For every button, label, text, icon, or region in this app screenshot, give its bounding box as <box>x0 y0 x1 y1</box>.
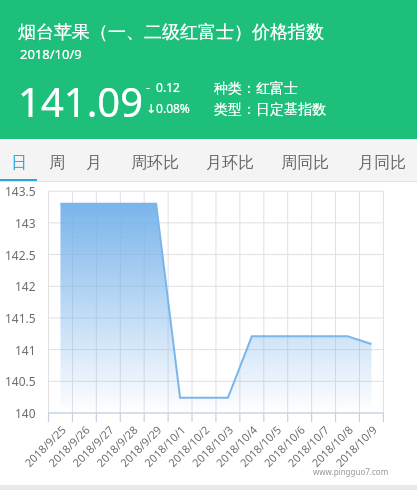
staticText: 种类：红富士 <box>214 80 298 98</box>
button[interactable]: 月环比 <box>203 139 257 181</box>
staticText: 周环比 <box>131 153 179 173</box>
staticText: 141.09 <box>18 74 144 128</box>
button[interactable]: 月 <box>80 139 108 181</box>
staticText: 周同比 <box>281 153 329 173</box>
staticText: 月 <box>86 153 102 173</box>
button[interactable]: 日 <box>5 139 33 181</box>
staticText: - 0.12 <box>146 79 180 95</box>
staticText: 周 <box>49 153 65 173</box>
staticText: www.pingguo7.com <box>313 466 389 477</box>
button[interactable]: 周环比 <box>128 139 182 181</box>
staticText: 月同比 <box>358 153 406 173</box>
button[interactable]: 周 <box>43 139 71 181</box>
staticText: 日 <box>11 153 27 173</box>
button[interactable]: 周同比 <box>278 139 332 181</box>
button[interactable]: 月同比 <box>355 139 409 181</box>
staticText: 月环比 <box>206 153 254 173</box>
staticText: 烟台苹果（一、二级红富士）价格指数 <box>18 21 324 44</box>
staticText: 2018/10/9 <box>20 45 82 63</box>
staticText: ↓0.08% <box>146 100 190 116</box>
staticText: 类型：日定基指数 <box>214 101 326 119</box>
